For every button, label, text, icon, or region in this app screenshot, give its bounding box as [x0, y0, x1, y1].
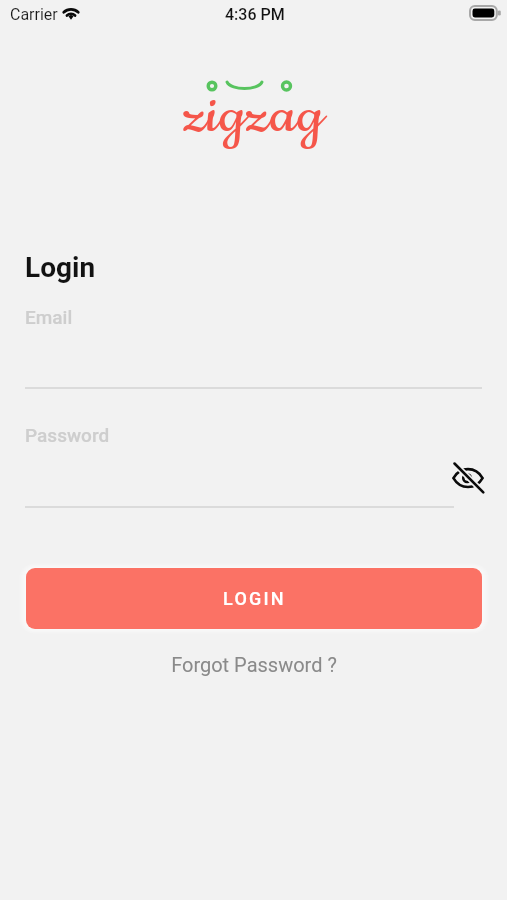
staticText: Password [25, 424, 110, 446]
staticText: 4:36 PM [225, 5, 285, 24]
button[interactable]: Forgot Password ? [163, 649, 345, 680]
button[interactable]: LOGIN [26, 568, 482, 629]
staticText: zigzag [0, 86, 507, 149]
staticText: Carrier [10, 5, 58, 24]
staticText: Login [25, 251, 96, 284]
button[interactable]: Show password [446, 455, 490, 499]
staticText: LOGIN [223, 588, 286, 609]
staticText: Email [25, 306, 73, 328]
